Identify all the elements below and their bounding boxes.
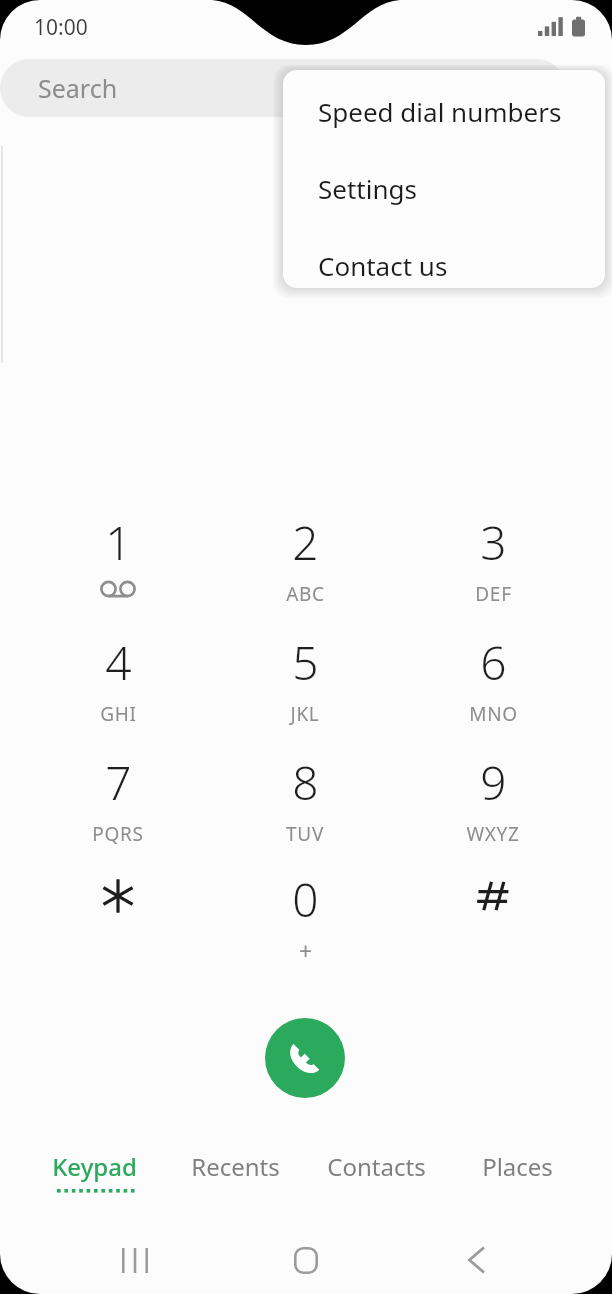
button[interactable]: 8	[224, 751, 386, 863]
staticText: 3	[480, 511, 507, 574]
button[interactable]: 1	[37, 511, 199, 623]
staticText: 7	[105, 751, 132, 814]
staticText: 4	[105, 631, 132, 694]
button[interactable]: Keypad	[22, 1150, 166, 1208]
button[interactable]: 2	[224, 511, 386, 623]
button[interactable]: Call	[265, 1018, 345, 1098]
staticText: PQRS	[92, 821, 144, 847]
staticText: 2	[292, 511, 319, 574]
button[interactable]	[37, 868, 199, 980]
button[interactable]: Contact us	[283, 236, 605, 288]
button[interactable]: Back	[442, 1236, 512, 1284]
button[interactable]: 6	[412, 631, 574, 743]
button[interactable]: 3	[412, 511, 574, 623]
staticText: GHI	[100, 701, 137, 727]
button[interactable]: 0	[224, 868, 386, 980]
staticText: ABC	[286, 581, 325, 607]
staticText: 6	[480, 631, 507, 694]
staticText: 9	[480, 751, 507, 814]
staticText: Contact us	[318, 248, 448, 283]
staticText: 10:00	[34, 13, 88, 42]
button[interactable]: 7	[37, 751, 199, 863]
button[interactable]: 4	[37, 631, 199, 743]
button[interactable]: Places	[445, 1150, 589, 1208]
button[interactable]: Contacts	[304, 1150, 448, 1208]
button[interactable]: Recents	[163, 1150, 307, 1208]
staticText: Keypad	[52, 1150, 137, 1183]
staticText: 5	[292, 631, 319, 694]
button[interactable]: Settings	[283, 159, 605, 217]
button[interactable]: Speed dial numbers	[283, 82, 605, 140]
staticText: JKL	[290, 701, 320, 727]
button[interactable]: Home	[271, 1236, 341, 1284]
button[interactable]: Recents	[100, 1236, 170, 1284]
button[interactable]: 9	[412, 751, 574, 863]
staticText: +	[299, 935, 313, 966]
staticText: 8	[292, 751, 319, 814]
staticText: 0	[292, 868, 319, 931]
staticText: 1	[105, 511, 132, 574]
staticText: Settings	[318, 171, 417, 206]
staticText: Speed dial numbers	[318, 94, 562, 129]
staticText: Contacts	[327, 1150, 426, 1183]
staticText: Recents	[191, 1150, 280, 1183]
button[interactable]	[412, 868, 574, 980]
staticText: Places	[482, 1150, 553, 1183]
staticText: Search	[38, 71, 118, 105]
button[interactable]: Search	[0, 59, 566, 117]
staticText: WXYZ	[466, 821, 520, 847]
staticText: MNO	[469, 701, 518, 727]
staticText: TUV	[286, 821, 324, 847]
button[interactable]: 5	[224, 631, 386, 743]
staticText: DEF	[475, 581, 512, 607]
